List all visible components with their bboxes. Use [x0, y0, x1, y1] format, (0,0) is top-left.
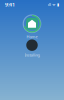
staticText: ıll ᯤ ▮ [48, 2, 59, 7]
staticText: 9:41 [5, 1, 15, 8]
staticText: Home [26, 34, 37, 39]
staticText: Installing [24, 52, 39, 58]
